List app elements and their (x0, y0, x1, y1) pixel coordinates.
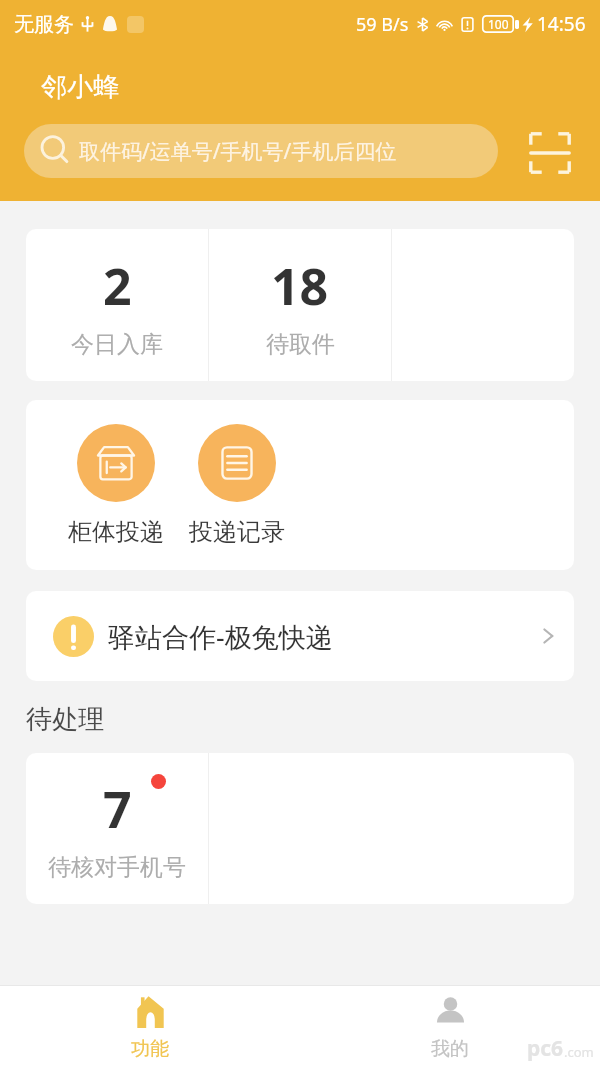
staticText: 待核对手机号 (48, 853, 186, 882)
button[interactable]: 2 (26, 229, 208, 381)
staticText: 14:56 (537, 11, 586, 37)
button[interactable]: 驿站合作-极兔快递 (26, 591, 574, 681)
staticText: 投递记录 (189, 517, 285, 547)
button[interactable]: 取件码/运单号/手机号/手机后四位 (24, 124, 498, 178)
staticText: 取件码/运单号/手机号/手机后四位 (79, 137, 397, 166)
staticText: 7 (103, 775, 132, 843)
staticText: 待取件 (266, 330, 335, 359)
staticText: 100 (488, 16, 509, 32)
staticText: 待处理 (26, 703, 104, 736)
staticText: 2 (103, 252, 132, 320)
staticText: 驿站合作-极兔快递 (108, 618, 333, 655)
staticText: 18 (271, 252, 329, 320)
staticText: 今日入库 (71, 330, 163, 359)
button[interactable]: 扫一扫 (524, 127, 576, 179)
staticText: 我的 (431, 1037, 469, 1061)
button[interactable]: 柜体投递 (68, 424, 164, 547)
button[interactable]: 投递记录 (189, 424, 285, 547)
staticText: 柜体投递 (68, 517, 164, 547)
button[interactable]: 7 (26, 753, 208, 904)
staticText: 功能 (131, 1037, 169, 1061)
staticText: 无服务 (14, 12, 74, 37)
button[interactable]: 我的 (300, 986, 600, 1070)
button[interactable]: 18 (209, 229, 391, 381)
staticText: .com (564, 1043, 594, 1061)
button[interactable]: 功能 (0, 986, 300, 1070)
staticText: pc6 (527, 1034, 564, 1063)
staticText: 邻小蜂 (41, 71, 119, 104)
staticText: 59 B/s (356, 12, 409, 37)
